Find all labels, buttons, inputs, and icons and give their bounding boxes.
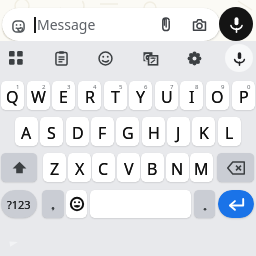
staticText: Message <box>37 15 96 34</box>
staticText: 6 <box>144 83 148 91</box>
staticText: D <box>72 122 84 144</box>
button[interactable]: I <box>180 81 203 110</box>
staticText: Y <box>136 86 146 108</box>
staticText: E <box>59 86 68 108</box>
staticText: D <box>72 122 84 144</box>
staticText: W <box>31 86 46 108</box>
button[interactable]: Y <box>129 81 152 110</box>
button[interactable]: M <box>190 153 213 182</box>
button[interactable]: V <box>117 153 140 182</box>
button[interactable]: S <box>40 117 63 146</box>
button[interactable]: Clipboard <box>46 43 76 73</box>
button[interactable]: Backspace <box>217 153 254 182</box>
button[interactable]: Translate <box>135 43 165 73</box>
staticText: I <box>189 86 195 108</box>
staticText: G <box>122 122 134 144</box>
staticText: L <box>225 122 234 144</box>
button[interactable]: K <box>192 117 215 146</box>
button[interactable]: P <box>232 81 255 110</box>
button[interactable]: N <box>166 153 189 182</box>
staticText: P <box>239 86 249 108</box>
staticText: ?123 <box>7 197 31 212</box>
staticText: S <box>47 122 56 144</box>
staticText: L <box>225 122 234 144</box>
button[interactable]: Emoji <box>90 43 120 73</box>
staticText: Z <box>50 158 60 180</box>
button[interactable] <box>194 190 215 218</box>
staticText: U <box>161 86 173 108</box>
staticText: C <box>98 158 109 180</box>
button[interactable]: G <box>116 117 139 146</box>
staticText: C <box>98 158 109 180</box>
staticText: Z <box>50 158 60 180</box>
staticText: V <box>124 158 134 180</box>
staticText: X <box>75 158 85 180</box>
staticText: U <box>161 86 173 108</box>
button[interactable]: X <box>68 153 91 182</box>
staticText: 4 <box>93 83 97 91</box>
staticText: 9 <box>221 83 225 91</box>
button[interactable]: D <box>66 117 89 146</box>
button[interactable]: Comma <box>42 190 64 218</box>
button[interactable]: F <box>91 117 114 146</box>
staticText: T <box>111 86 120 108</box>
button[interactable]: T <box>104 81 127 110</box>
button[interactable]: L <box>218 117 241 146</box>
button[interactable]: Message <box>2 8 220 41</box>
button[interactable]: Q <box>1 81 24 110</box>
staticText: 3 <box>67 83 71 91</box>
button[interactable]: Shift <box>1 153 37 182</box>
staticText: L <box>225 122 234 144</box>
staticText: Q <box>6 86 19 108</box>
staticText: D <box>72 122 84 144</box>
button[interactable]: J <box>167 117 190 146</box>
staticText: G <box>144 52 150 63</box>
staticText: 1 <box>16 83 20 91</box>
button[interactable]: H <box>142 117 165 146</box>
button[interactable]: A <box>15 117 38 146</box>
button[interactable]: Emoji <box>66 190 87 218</box>
button[interactable]: Enter <box>218 190 254 218</box>
button[interactable]: ?123 <box>1 190 37 218</box>
staticText: T <box>111 86 120 108</box>
staticText: O <box>211 86 224 108</box>
staticText: G <box>122 122 134 144</box>
staticText: J <box>176 122 181 144</box>
staticText: H <box>148 122 160 144</box>
staticText: F <box>98 122 107 144</box>
staticText: J <box>176 122 181 144</box>
button[interactable]: Apps <box>1 43 31 73</box>
staticText: R <box>85 86 95 108</box>
staticText: G <box>122 122 134 144</box>
button[interactable]: W <box>27 81 50 110</box>
staticText: F <box>98 122 107 144</box>
button[interactable]: E <box>52 81 75 110</box>
staticText: A <box>21 122 32 144</box>
staticText: U <box>161 86 173 108</box>
button[interactable]: Settings <box>179 43 209 73</box>
staticText: 5 <box>119 83 123 91</box>
button[interactable]: R <box>78 81 101 110</box>
button[interactable]: Attach <box>155 13 176 34</box>
staticText: Z <box>50 158 60 180</box>
staticText: ?123 <box>7 197 31 212</box>
button[interactable]: Camera <box>189 13 210 34</box>
button[interactable]: O <box>206 81 229 110</box>
staticText: K <box>199 122 209 144</box>
staticText: M <box>194 158 209 180</box>
staticText: S <box>47 122 56 144</box>
staticText: T <box>111 86 120 108</box>
button[interactable]: Voice input <box>224 43 254 73</box>
staticText: Q <box>6 86 19 108</box>
button[interactable]: Voice message <box>219 7 253 41</box>
staticText: M <box>194 158 209 180</box>
staticText: P <box>239 86 249 108</box>
staticText: 2 <box>42 83 46 91</box>
button[interactable]: Z <box>43 153 66 182</box>
staticText: H <box>148 122 160 144</box>
staticText: N <box>171 158 184 180</box>
button[interactable]: B <box>141 153 164 182</box>
button[interactable]: C <box>92 153 115 182</box>
button[interactable]: U <box>155 81 178 110</box>
